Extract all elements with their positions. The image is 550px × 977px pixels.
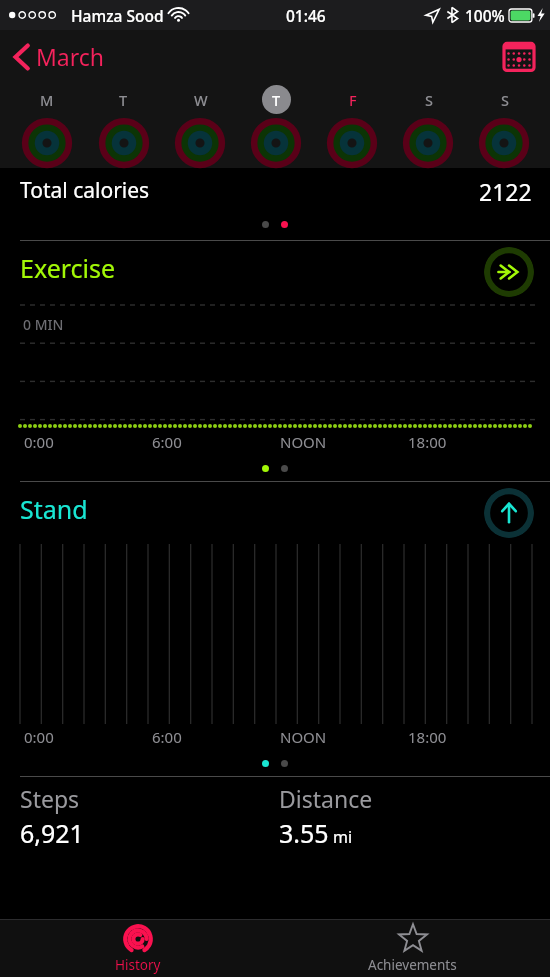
button[interactable]: S: [466, 82, 542, 168]
staticText: S: [501, 90, 509, 110]
staticText: M: [40, 90, 54, 110]
staticText: T: [272, 90, 281, 110]
staticText: Total calories: [20, 176, 150, 205]
button[interactable]: History: [0, 920, 275, 977]
staticText: 100%: [465, 5, 505, 26]
staticText: Steps: [20, 783, 80, 814]
button[interactable]: S: [390, 82, 466, 168]
staticText: NOON: [280, 432, 327, 452]
staticText: Distance: [279, 783, 373, 814]
button[interactable]: Total calories: [0, 168, 550, 240]
staticText: 6:00: [152, 432, 182, 452]
staticText: Hamza Sood: [71, 5, 164, 26]
staticText: March: [36, 41, 105, 72]
staticText: 6:00: [152, 727, 182, 747]
button[interactable]: Calendar: [498, 35, 540, 77]
button[interactable]: Steps: [20, 783, 279, 850]
staticText: 01:46: [286, 5, 326, 26]
staticText: 0:00: [24, 727, 54, 747]
button[interactable]: W: [162, 82, 238, 168]
button[interactable]: M: [8, 82, 85, 168]
staticText: Achievements: [368, 956, 457, 974]
button[interactable]: T: [238, 82, 314, 168]
button[interactable]: March: [0, 35, 117, 78]
staticText: 18:00: [408, 727, 447, 747]
staticText: NOON: [280, 727, 327, 747]
staticText: mi: [333, 826, 353, 848]
staticText: Exercise: [20, 251, 116, 285]
staticText: 2122: [479, 176, 532, 207]
staticText: F: [349, 90, 357, 110]
staticText: T: [119, 90, 128, 110]
button[interactable]: Stand details: [484, 488, 534, 538]
staticText: W: [194, 90, 208, 110]
staticText: S: [425, 90, 433, 110]
staticText: Stand: [20, 492, 88, 526]
staticText: 0 MIN: [23, 315, 64, 334]
button[interactable]: Achievements: [275, 920, 550, 977]
button[interactable]: T: [85, 82, 162, 168]
staticText: 0:00: [24, 432, 54, 452]
button[interactable]: Exercise details: [484, 247, 534, 297]
button[interactable]: Distance: [279, 783, 550, 850]
staticText: 6,921: [20, 816, 84, 850]
button[interactable]: F: [314, 82, 390, 168]
staticText: 3.55: [279, 816, 329, 850]
staticText: History: [115, 956, 161, 974]
staticText: 18:00: [408, 432, 447, 452]
